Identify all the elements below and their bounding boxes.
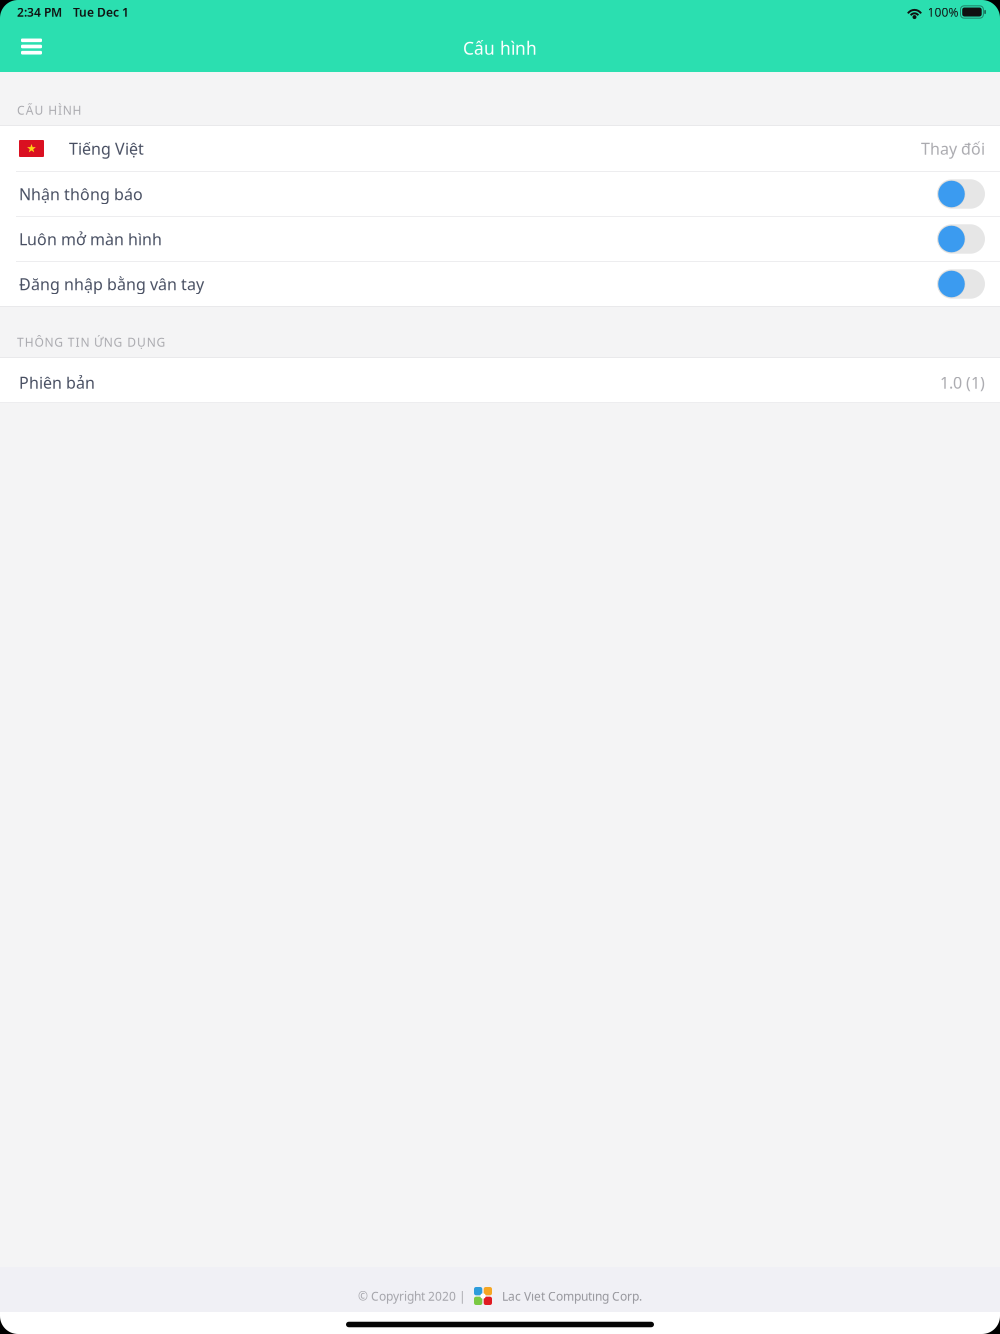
staticText: Thay đổi (921, 138, 985, 159)
staticText: Cấu hình (463, 36, 537, 59)
button[interactable]: Nhận thông báo (0, 172, 1000, 216)
staticText: 1.0 (1) (940, 372, 985, 393)
staticText: 100% (927, 4, 958, 20)
button[interactable]: Thay đổi (921, 126, 1000, 171)
staticText: CẤU HÌNH (17, 102, 82, 118)
staticText: Luôn mở màn hình (19, 228, 162, 250)
staticText: Lac Viet Computing Corp. (502, 1288, 642, 1304)
staticText: 2:34 PM (17, 4, 62, 20)
staticText: Tue Dec 1 (73, 4, 129, 20)
staticText: THÔNG TIN ỨNG DỤNG (17, 334, 166, 350)
button[interactable]: Menu (0, 24, 56, 72)
staticText: © Copyright 2020 | (358, 1288, 466, 1304)
button[interactable]: Đăng nhập bằng vân tay (0, 262, 1000, 306)
staticText: Phiên bản (19, 372, 95, 393)
staticText: Nhận thông báo (19, 183, 143, 205)
staticText: Tiếng Việt (69, 138, 144, 159)
staticText: Đăng nhập bằng vân tay (19, 273, 204, 295)
button[interactable]: Tiếng Việt (0, 126, 1000, 171)
button[interactable]: Luôn mở màn hình (0, 217, 1000, 261)
